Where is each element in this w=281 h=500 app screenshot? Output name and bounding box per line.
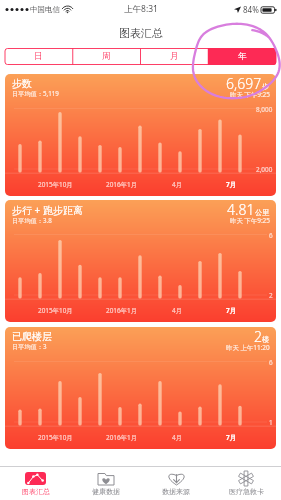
button[interactable]: 步行 + 跑步距离	[5, 200, 276, 322]
staticText: 医疗急救卡	[229, 487, 264, 496]
button[interactable]: 周	[72, 48, 140, 65]
staticText: 8,000	[256, 105, 273, 114]
other: 健康数据	[97, 472, 115, 486]
staticText: 6	[269, 231, 273, 240]
staticText: 2015年10月	[38, 306, 73, 315]
staticText: 健康数据	[92, 487, 120, 496]
staticText: 步数	[12, 77, 32, 90]
staticText: 2016年1月	[106, 306, 138, 315]
staticText: 中国电信	[30, 5, 60, 14]
button[interactable]: 月	[140, 48, 208, 65]
button[interactable]: 已爬楼层	[5, 327, 276, 449]
staticText: 2	[269, 291, 273, 300]
other: 数据来源	[168, 471, 185, 486]
button[interactable]: 日	[5, 48, 72, 65]
staticText: 2016年1月	[106, 433, 138, 442]
staticText: 周	[102, 51, 111, 62]
other: 图表汇总	[25, 472, 46, 485]
other: 医疗急救卡	[236, 471, 256, 486]
staticText: 7月	[226, 433, 237, 442]
staticText: 日平均值：5,119	[12, 89, 59, 97]
staticText: 年	[238, 51, 247, 62]
button[interactable]: 数据来源	[141, 467, 211, 500]
staticText: 昨天 下午9:25	[230, 216, 270, 225]
staticText: 2,000	[256, 165, 273, 174]
staticText: 图表汇总	[119, 26, 163, 40]
staticText: 6,697	[226, 74, 262, 93]
staticText: 1	[269, 418, 273, 427]
button[interactable]: 步数	[5, 74, 276, 196]
staticText: 上午8:31	[124, 3, 158, 15]
staticText: 4.81	[227, 200, 255, 219]
staticText: 2016年1月	[106, 180, 138, 189]
staticText: 昨天 下午9:25	[230, 90, 270, 99]
staticText: 公里	[255, 208, 270, 217]
button[interactable]: 健康数据	[71, 467, 141, 500]
staticText: 日平均值：3.8	[12, 216, 52, 224]
staticText: 图表汇总	[22, 487, 50, 496]
staticText: 2015年10月	[38, 433, 73, 442]
button[interactable]: 图表汇总	[0, 467, 71, 500]
button[interactable]: 年	[208, 48, 276, 65]
staticText: 日平均值：3	[12, 342, 47, 350]
staticText: 4月	[172, 306, 183, 315]
staticText: 已爬楼层	[12, 330, 52, 343]
staticText: 6	[269, 358, 273, 367]
staticText: 日	[34, 51, 43, 62]
staticText: 2015年10月	[38, 180, 73, 189]
staticText: 4月	[172, 433, 183, 442]
staticText: 昨天 上午11:20	[226, 343, 270, 352]
staticText: 楼	[262, 335, 270, 344]
staticText: 数据来源	[162, 487, 190, 496]
staticText: 步行 + 跑步距离	[12, 203, 83, 217]
button[interactable]: 医疗急救卡	[211, 467, 281, 500]
staticText: 月	[170, 51, 179, 62]
staticText: 7月	[226, 180, 237, 189]
staticText: 7月	[226, 306, 237, 315]
staticText: 84%	[243, 4, 259, 15]
staticText: 2	[254, 327, 262, 346]
staticText: 步	[262, 82, 270, 91]
staticText: 4月	[172, 180, 183, 189]
